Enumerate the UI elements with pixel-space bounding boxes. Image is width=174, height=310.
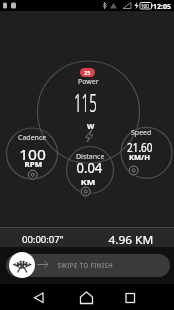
staticText: KM	[81, 177, 96, 187]
button[interactable]	[37, 61, 139, 163]
button[interactable]	[116, 284, 174, 310]
button[interactable]	[6, 254, 170, 277]
staticText: KM/H	[129, 152, 150, 162]
staticText: 100	[141, 3, 149, 9]
staticText: 12:05	[153, 2, 171, 12]
staticText: 4.96 KM	[108, 233, 154, 247]
staticText: 0.04	[76, 159, 102, 177]
button[interactable]	[9, 252, 35, 278]
staticText: Power	[78, 77, 99, 87]
staticText: RPM	[25, 159, 42, 169]
staticText: 25	[84, 69, 91, 76]
button[interactable]	[0, 284, 58, 310]
staticText: SWIPE TO FINISH	[57, 261, 113, 270]
button[interactable]	[121, 127, 172, 178]
staticText: 00:00:07"	[22, 233, 64, 246]
button[interactable]	[66, 146, 113, 193]
staticText: Cadence	[18, 133, 47, 143]
button[interactable]	[58, 284, 116, 310]
staticText: 100	[19, 146, 47, 164]
staticText: Speed	[131, 128, 152, 138]
staticText: 21.60	[127, 138, 153, 156]
button[interactable]	[6, 128, 57, 179]
staticText: 115	[74, 84, 97, 119]
staticText: Distance	[76, 152, 105, 162]
staticText: W	[87, 121, 95, 131]
